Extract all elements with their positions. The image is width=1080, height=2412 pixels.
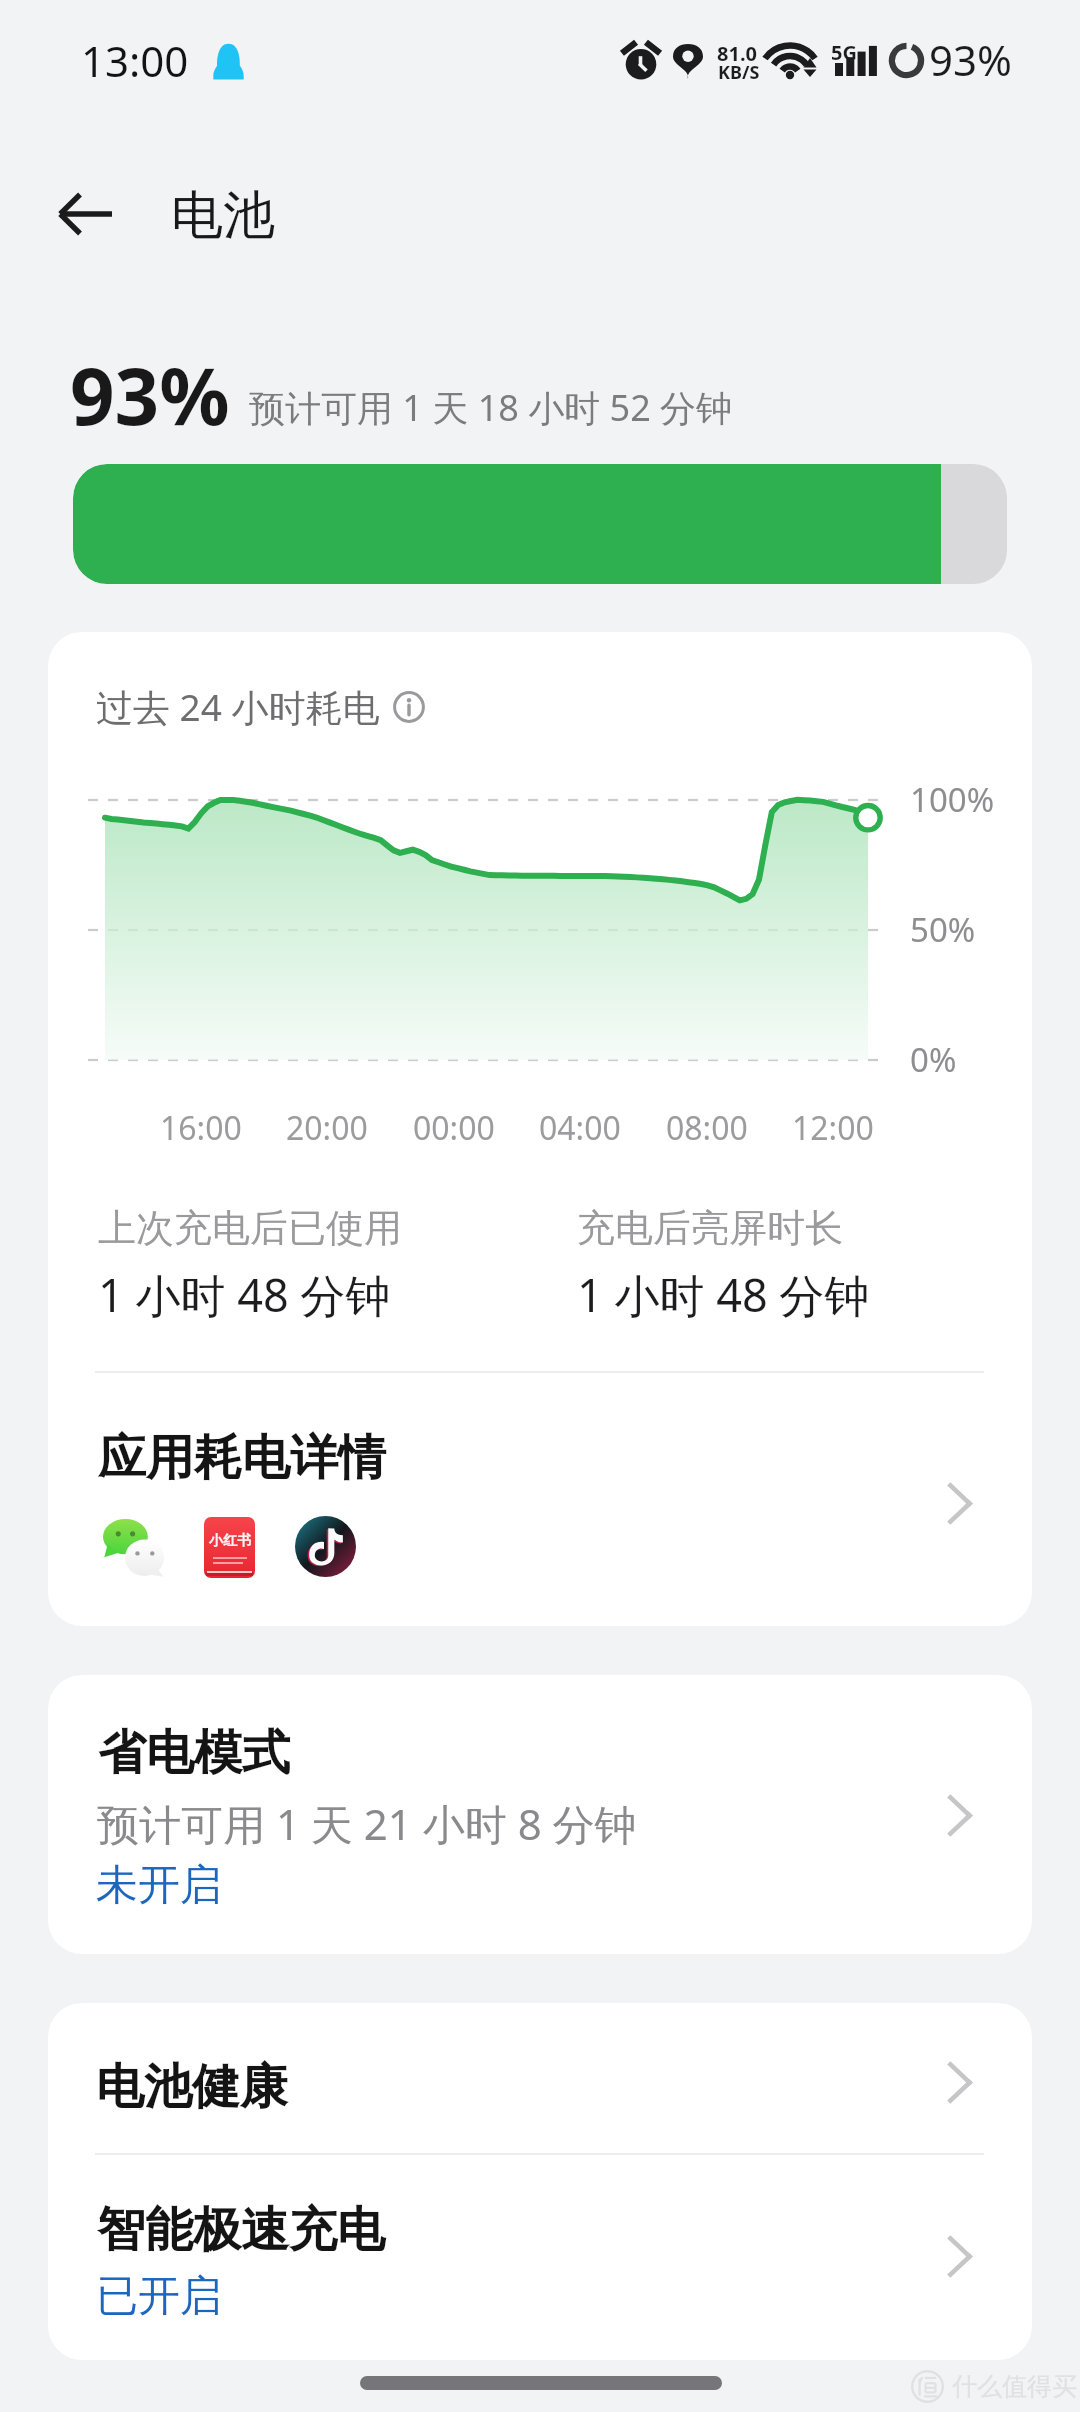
staticText: 充电后亮屏时长: [577, 1204, 843, 1252]
staticText: 电池: [171, 183, 275, 249]
staticText: 过去 24 小时耗电: [96, 681, 380, 732]
staticText: 小红书: [209, 1532, 251, 1550]
staticText: 5G: [831, 39, 857, 66]
staticText: 已开启: [96, 2270, 222, 2323]
staticText: 08:00: [666, 1106, 748, 1150]
button[interactable]: Back: [47, 175, 125, 253]
staticText: 93%: [70, 342, 230, 448]
staticText: 电池健康: [96, 2057, 288, 2117]
staticText: 04:00: [539, 1106, 621, 1150]
staticText: 81.0: [717, 40, 757, 67]
staticText: KB/S: [718, 60, 760, 85]
staticText: 什么值得买: [952, 2371, 1077, 2402]
staticText: 16:00: [160, 1106, 242, 1150]
staticText: 13:00: [81, 32, 189, 89]
staticText: 93%: [929, 31, 1012, 88]
staticText: 未开启: [96, 1859, 222, 1912]
staticText: 50%: [910, 907, 976, 952]
button[interactable]: 智能极速充电: [48, 2155, 1032, 2360]
staticText: 预计可用 1 天 18 小时 52 分钟: [249, 383, 733, 432]
staticText: 智能极速充电: [97, 2200, 385, 2260]
staticText: 预计可用 1 天 21 小时 8 分钟: [97, 1795, 637, 1852]
staticText: 上次充电后已使用: [98, 1204, 402, 1252]
button[interactable]: 应用耗电详情: [48, 1377, 1032, 1626]
staticText: 省电模式: [98, 1723, 290, 1783]
staticText: 12:00: [792, 1106, 874, 1150]
staticText: 应用耗电详情: [98, 1428, 386, 1488]
staticText: 20:00: [286, 1106, 368, 1150]
button[interactable]: 省电模式: [48, 1675, 1032, 1954]
staticText: 1 小时 48 分钟: [577, 1264, 870, 1325]
staticText: 00:00: [413, 1106, 495, 1150]
staticText: 1 小时 48 分钟: [98, 1264, 391, 1325]
button[interactable]: 电池健康: [48, 2003, 1032, 2153]
staticText: 100%: [910, 777, 995, 822]
staticText: 0%: [910, 1037, 957, 1082]
